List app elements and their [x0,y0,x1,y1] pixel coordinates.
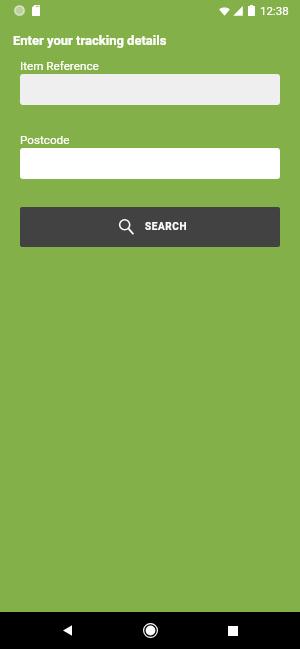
staticText: Postcode [20,133,70,147]
staticText: 12:38 [260,4,289,17]
button[interactable]: Back [45,612,90,649]
button[interactable]: Home [128,612,173,649]
button[interactable]: Postcode input field [20,148,280,179]
staticText: SEARCH [145,221,188,233]
button[interactable]: Item Reference input field [20,74,280,105]
button[interactable]: SEARCH [20,207,280,247]
button[interactable]: Recent apps [210,612,255,649]
staticText: Item Reference [20,59,99,73]
staticText: Enter your tracking details [13,33,167,48]
